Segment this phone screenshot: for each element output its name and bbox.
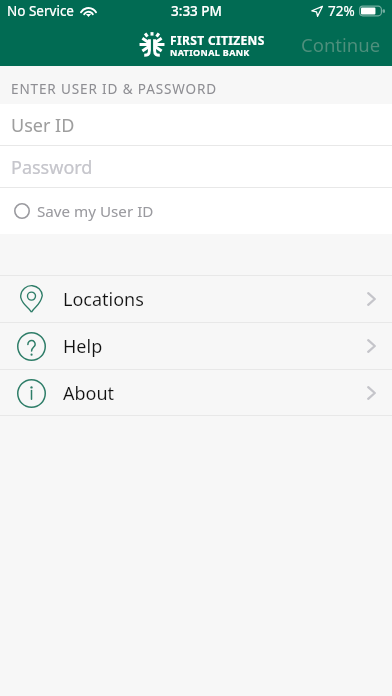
other: Wi-Fi [80,5,97,17]
staticText: Password [11,155,93,180]
staticText: No Service [7,2,74,20]
button[interactable]: User ID [0,104,392,145]
staticText: User ID [11,113,75,138]
staticText: NATIONAL BANK [170,46,250,58]
button[interactable]: Locations [0,276,392,322]
button[interactable]: About [0,370,392,416]
staticText: Help [63,334,103,359]
staticText: Locations [63,287,144,312]
staticText: Continue [301,32,381,57]
button[interactable]: Continue [290,26,392,63]
staticText: Save my User ID [37,201,154,222]
other: Location [311,5,323,17]
other: Help [17,332,46,361]
other: Locations [20,285,43,313]
button[interactable]: Help [0,323,392,369]
staticText: ENTER USER ID & PASSWORD [11,80,217,98]
other: About [17,379,46,408]
staticText: 3:33 PM [171,2,222,20]
other: Battery 72 percent [359,5,385,17]
button[interactable]: Save my User ID [0,188,392,234]
button[interactable]: Password [0,146,392,187]
staticText: 72% [328,2,355,20]
staticText: FIRST CITIZENS [170,32,265,48]
staticText: About [63,381,115,406]
